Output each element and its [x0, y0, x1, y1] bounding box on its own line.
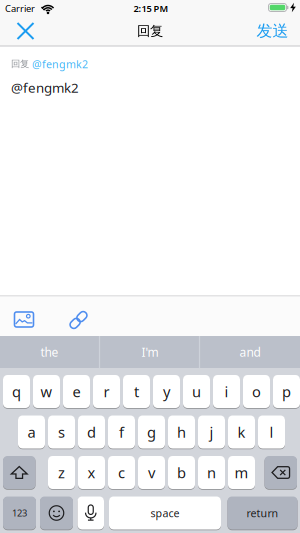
staticText: m [234, 463, 248, 482]
staticText: f [119, 422, 124, 442]
staticText: I'm [141, 344, 158, 360]
staticText: d [87, 422, 96, 442]
staticText: k [237, 422, 245, 442]
button[interactable]: q [3, 374, 30, 408]
staticText: s [58, 422, 65, 442]
staticText: @fengmk2 [32, 57, 88, 71]
staticText: j [209, 422, 213, 442]
button[interactable]: t [123, 374, 150, 408]
button[interactable]: r [93, 374, 120, 408]
staticText: h [177, 422, 186, 442]
button[interactable] [77, 496, 104, 530]
button[interactable]: 123 [3, 496, 36, 530]
button[interactable]: return [227, 496, 297, 530]
button[interactable]: l [258, 415, 285, 449]
button[interactable] [10, 16, 40, 46]
button[interactable]: g [138, 415, 165, 449]
button[interactable]: i [213, 374, 240, 408]
staticText: y [163, 382, 170, 401]
button[interactable]: I'm [101, 336, 199, 368]
staticText: l [269, 422, 273, 442]
staticText: return [246, 506, 278, 520]
staticText: and [239, 344, 260, 360]
staticText: r [103, 382, 109, 401]
staticText: c [118, 463, 125, 482]
staticText: b [177, 463, 186, 482]
staticText: g [147, 422, 156, 442]
button[interactable]: n [198, 455, 225, 489]
staticText: 123 [12, 507, 27, 519]
staticText: e [72, 382, 80, 401]
button[interactable] [264, 455, 297, 489]
button[interactable]: b [168, 455, 195, 489]
button[interactable] [40, 496, 73, 530]
staticText: o [252, 382, 261, 401]
button[interactable]: s [48, 415, 75, 449]
button[interactable]: w [33, 374, 60, 408]
staticText: u [192, 382, 201, 401]
staticText: a [27, 422, 35, 442]
button[interactable]: e [63, 374, 90, 408]
staticText: n [207, 463, 216, 482]
button[interactable]: f [108, 415, 135, 449]
button[interactable] [3, 455, 35, 489]
staticText: v [148, 463, 155, 482]
button[interactable]: v [138, 455, 165, 489]
button[interactable]: y [153, 374, 180, 408]
staticText: Carrier [5, 2, 35, 15]
button[interactable]: space [109, 496, 221, 530]
button[interactable] [66, 308, 90, 332]
staticText: space [150, 506, 179, 520]
button[interactable]: k [228, 415, 255, 449]
staticText: w [40, 382, 52, 401]
button[interactable]: a [18, 415, 45, 449]
staticText: t [134, 382, 139, 401]
button[interactable]: u [183, 374, 210, 408]
button[interactable]: the [0, 336, 98, 368]
staticText: 回复 [137, 23, 163, 39]
staticText: i [224, 382, 228, 401]
button[interactable]: 发送 [247, 16, 297, 46]
staticText: p [282, 382, 291, 401]
button[interactable]: x [78, 455, 105, 489]
button[interactable]: m [228, 455, 255, 489]
staticText: z [58, 463, 65, 482]
button[interactable]: o [243, 374, 270, 408]
staticText: @fengmk2 [11, 79, 79, 96]
button[interactable]: z [48, 455, 75, 489]
staticText: x [87, 463, 95, 482]
staticText: 2:15 PM [133, 2, 168, 15]
staticText: 发送 [256, 21, 288, 41]
button[interactable]: p [273, 374, 300, 408]
button[interactable] [11, 307, 37, 331]
staticText: the [40, 344, 58, 360]
staticText: 回复 [11, 58, 29, 70]
button[interactable]: j [198, 415, 225, 449]
button[interactable]: d [78, 415, 105, 449]
button[interactable]: and [201, 336, 299, 368]
staticText: q [12, 382, 21, 401]
button[interactable]: c [108, 455, 135, 489]
button[interactable]: h [168, 415, 195, 449]
